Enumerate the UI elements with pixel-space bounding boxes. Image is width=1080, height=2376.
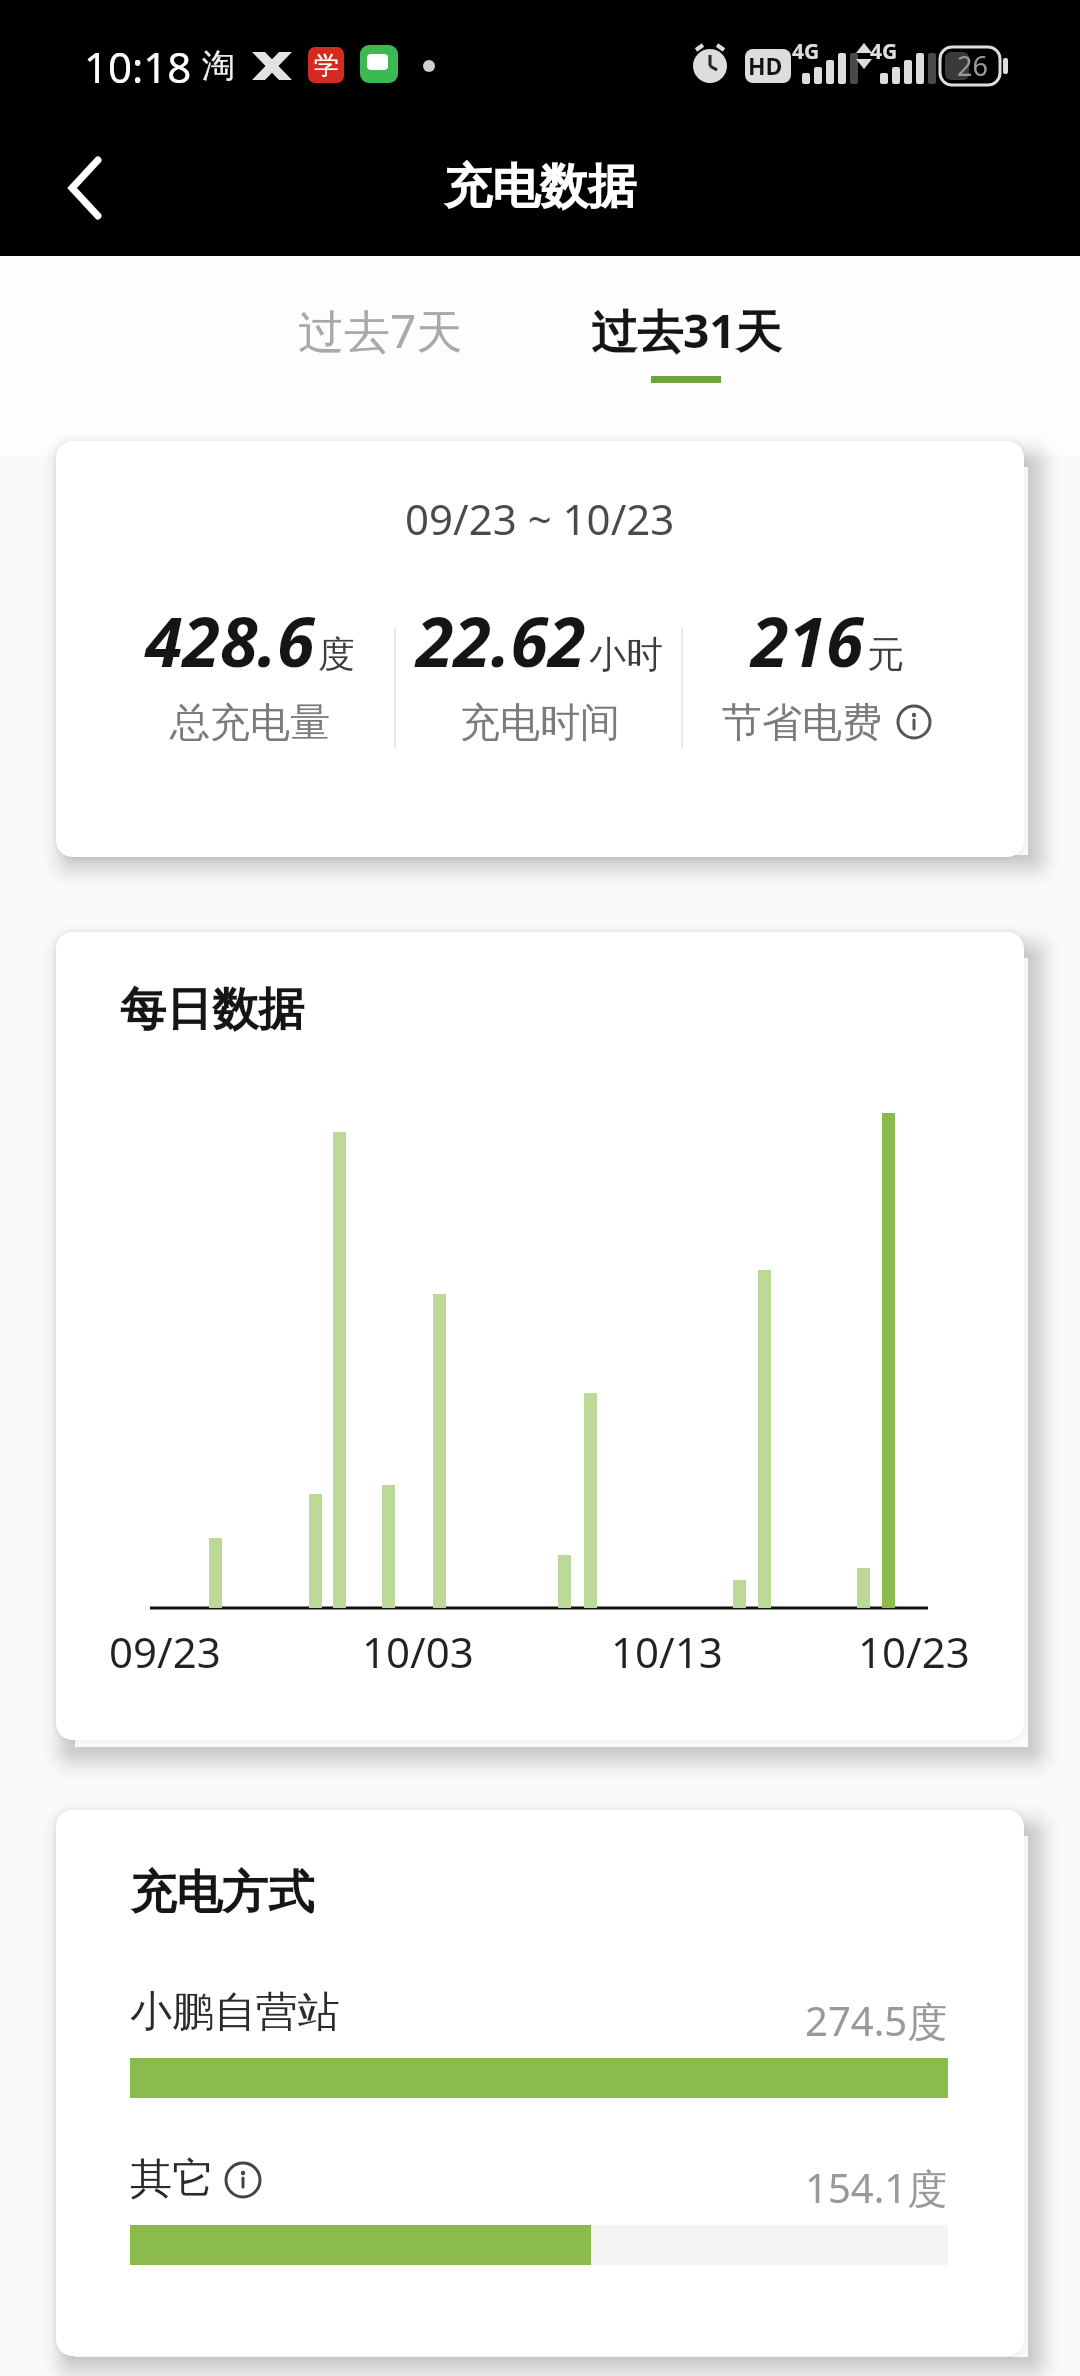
staticText: 4G [792, 37, 820, 66]
button[interactable] [223, 2160, 263, 2200]
button[interactable]: 过去31天 [556, 280, 816, 380]
staticText: 428.6 度 [145, 594, 356, 687]
button[interactable] [48, 150, 124, 226]
staticText: 154.1度 [805, 2160, 948, 2215]
staticText: 22.62 小时 [416, 594, 664, 687]
staticText: 过去31天 [591, 299, 782, 362]
staticText: 过去7天 [298, 299, 463, 362]
staticText: 学 [314, 50, 339, 81]
staticText: 10/23 [858, 1623, 970, 1680]
staticText: 淘 [202, 45, 235, 87]
staticText: 10:18 [84, 38, 192, 95]
staticText: 4G [870, 37, 898, 66]
staticText: 26 [957, 47, 988, 84]
button[interactable] [894, 702, 934, 742]
staticText: 充电时间 [460, 697, 620, 747]
staticText: 10/13 [611, 1623, 723, 1680]
staticText: 09/23 ~ 10/23 [405, 490, 675, 547]
staticText: 小鹏自营站 [130, 1986, 340, 2039]
staticText: 每日数据 [120, 981, 304, 1039]
staticText: 充电数据 [444, 157, 636, 217]
staticText: 充电方式 [130, 1864, 314, 1922]
staticText: 总充电量 [170, 697, 330, 747]
staticText: 其它 [130, 2153, 214, 2206]
staticText: 274.5度 [805, 1993, 948, 2048]
button[interactable]: 过去7天 [250, 280, 510, 380]
staticText: 09/23 [109, 1623, 221, 1680]
staticText: 10/03 [362, 1623, 474, 1680]
staticText: HD [748, 50, 783, 81]
staticText: 节省电费 [722, 697, 882, 747]
staticText: 216 元 [751, 594, 905, 687]
